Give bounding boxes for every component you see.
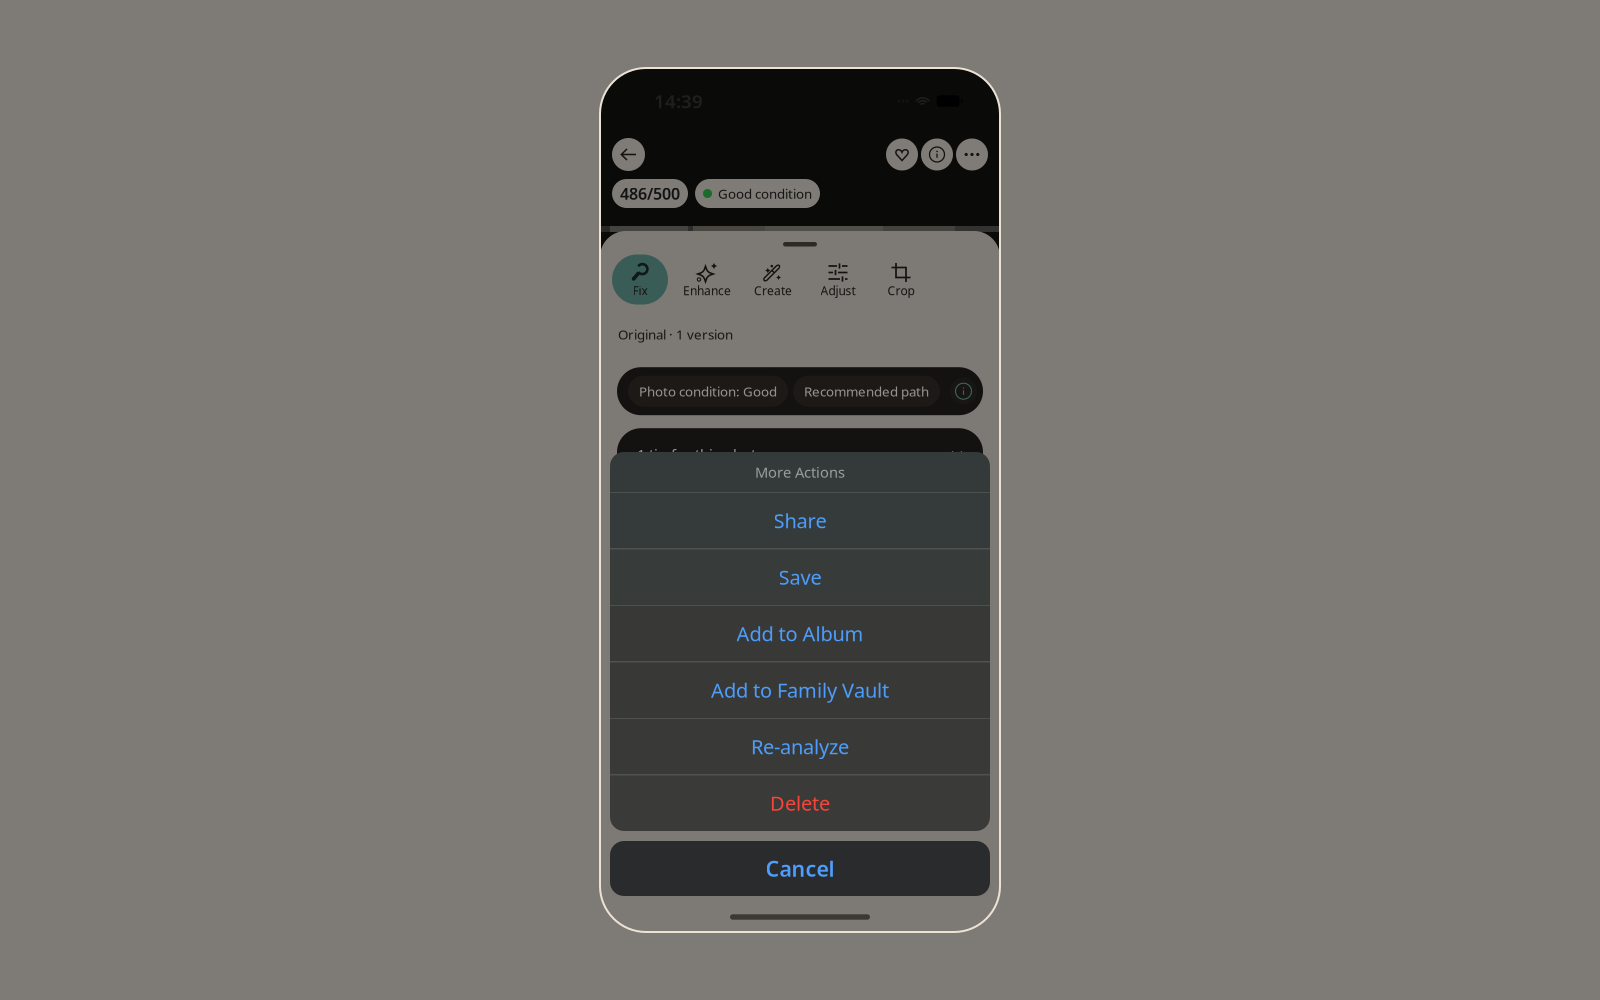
staticText: Enhance [683,282,731,298]
button[interactable]: Add to Family Vault [610,662,990,718]
staticText: Add to Album [736,620,863,647]
staticText: Recommended path [804,382,929,400]
button[interactable]: 486/500 [612,179,688,208]
button[interactable]: Save [610,549,990,605]
button[interactable]: 1 tip for this photo [617,428,983,480]
button[interactable]: Good condition [695,179,820,208]
staticText: Original · 1 version [618,325,733,343]
staticText: 1 tip for this photo [637,444,765,464]
staticText: Save [778,564,821,590]
staticText: 486/500 [620,183,680,204]
staticText: Re-analyze [751,733,849,760]
button[interactable]: More options [956,138,988,170]
button[interactable]: Crop [870,254,932,304]
button[interactable]: Share [610,493,990,548]
staticText: Add to Family Vault [711,677,889,703]
staticText: Fix [632,282,647,298]
staticText: More Actions [755,462,845,482]
staticText: Share [773,507,826,534]
button[interactable]: Cancel [610,841,990,896]
button[interactable]: Delete [610,775,990,831]
button[interactable]: Info [921,138,953,170]
staticText: Create [754,282,792,298]
button[interactable]: Create [740,254,806,304]
button[interactable]: About this analysis [950,378,977,405]
button[interactable]: Add to Album [610,606,990,661]
button[interactable]: Enhance [674,254,740,304]
staticText: Good condition [718,185,812,202]
button[interactable]: Re-analyze [610,719,990,774]
staticText: Adjust [820,282,855,298]
staticText: Cancel [765,854,834,883]
staticText: Delete [770,790,830,816]
button[interactable]: Favourite [886,138,918,170]
staticText: Crop [887,282,914,298]
staticText: 14:39 [654,89,703,113]
button[interactable]: Fix [606,254,674,304]
button[interactable]: Back [612,138,645,171]
button[interactable]: Adjust [806,254,870,304]
staticText: Photo condition: Good [639,382,777,400]
